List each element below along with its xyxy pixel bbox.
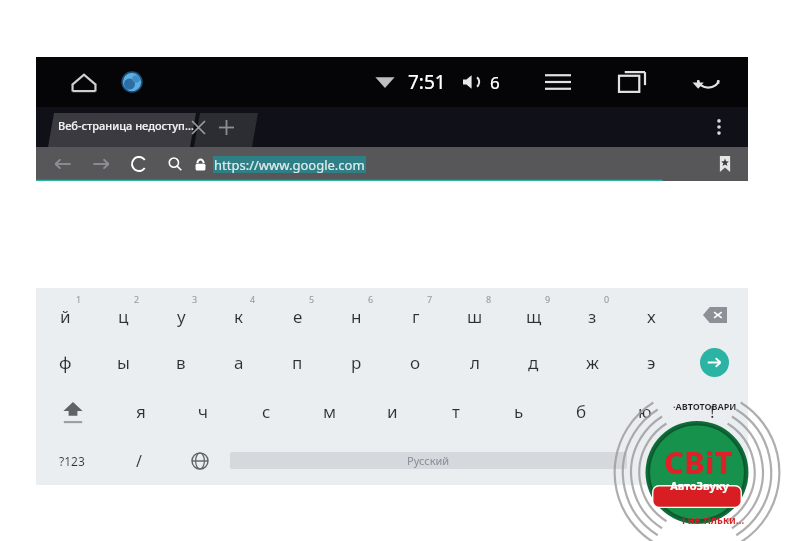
button[interactable]: Forward xyxy=(86,149,116,179)
button[interactable]: Change language xyxy=(169,436,230,485)
button[interactable]: https://www.google.com xyxy=(213,156,366,173)
button[interactable]: Browser xyxy=(112,62,152,102)
button[interactable]: б xyxy=(550,387,613,436)
button[interactable]: 5 xyxy=(268,288,327,338)
button[interactable]: ?123 xyxy=(36,436,108,485)
staticText: 2 xyxy=(134,293,140,305)
staticText: СВіТ xyxy=(664,441,733,483)
button[interactable]: 2 xyxy=(94,288,152,338)
button[interactable]: х xyxy=(622,288,681,338)
button[interactable]: / xyxy=(108,436,169,485)
button[interactable]: ь xyxy=(487,387,550,436)
staticText: у xyxy=(177,305,186,328)
button[interactable]: 8 xyxy=(445,288,504,338)
staticText: е xyxy=(293,305,303,328)
staticText: о xyxy=(410,351,421,374)
button[interactable]: д xyxy=(504,338,563,387)
staticText: д xyxy=(528,351,539,374)
staticText: Русский xyxy=(407,453,450,468)
staticText: в xyxy=(176,351,186,374)
button[interactable]: м xyxy=(298,387,361,436)
button[interactable]: Веб-страница недоступ… xyxy=(58,118,194,133)
staticText: 7:51 xyxy=(408,69,446,95)
button[interactable]: Back xyxy=(684,60,728,104)
button[interactable]: л xyxy=(445,338,504,387)
staticText: 0 xyxy=(604,293,610,305)
staticText: ь xyxy=(514,400,524,423)
staticText: ю xyxy=(638,400,652,423)
staticText: ! xyxy=(710,400,715,423)
button[interactable]: я xyxy=(109,387,172,436)
staticText: й xyxy=(60,305,71,328)
staticText: а xyxy=(234,351,244,374)
staticText: с xyxy=(262,400,271,423)
staticText: / xyxy=(136,450,142,472)
button[interactable]: т xyxy=(424,387,487,436)
button[interactable]: Go xyxy=(681,338,748,387)
button[interactable]: ю xyxy=(613,387,676,436)
button[interactable]: Русский xyxy=(230,452,627,469)
button[interactable]: Backspace xyxy=(681,288,748,338)
button[interactable]: ! xyxy=(676,387,748,436)
staticText: б xyxy=(576,400,587,423)
staticText: https://www.google.com xyxy=(214,156,365,173)
staticText: х xyxy=(647,305,656,328)
button[interactable]: Home xyxy=(64,62,104,102)
button[interactable]: п xyxy=(268,338,327,387)
staticText: 1 xyxy=(76,293,82,305)
staticText: ч xyxy=(198,400,209,423)
staticText: з xyxy=(588,305,597,328)
button[interactable]: о xyxy=(386,338,445,387)
staticText: 4 xyxy=(250,293,256,305)
button[interactable]: 1 xyxy=(36,288,94,338)
staticText: ж xyxy=(586,351,599,374)
staticText: ·АВТОТОВАРИ xyxy=(673,400,737,412)
button[interactable]: 4 xyxy=(210,288,268,338)
button[interactable]: ф xyxy=(36,338,94,387)
button[interactable]: Menu xyxy=(536,60,580,104)
button[interactable]: 9 xyxy=(504,288,563,338)
button[interactable]: Bookmark xyxy=(708,147,742,181)
button[interactable]: 0 xyxy=(563,288,622,338)
button[interactable]: Recents xyxy=(610,60,654,104)
button[interactable]: э xyxy=(622,338,681,387)
staticText: ф xyxy=(59,351,72,374)
button[interactable]: More options xyxy=(704,112,734,142)
staticText: я xyxy=(136,400,146,423)
button[interactable]: с xyxy=(235,387,298,436)
button[interactable]: ч xyxy=(172,387,235,436)
staticText: ы xyxy=(117,351,130,374)
button[interactable] xyxy=(627,436,748,485)
button[interactable]: 7 xyxy=(386,288,445,338)
button[interactable]: ж xyxy=(563,338,622,387)
staticText: і не тільки… xyxy=(682,513,745,527)
staticText: т xyxy=(452,400,460,423)
staticText: ц xyxy=(118,305,129,328)
button[interactable]: New tab xyxy=(212,113,240,141)
button[interactable]: в xyxy=(152,338,210,387)
button[interactable]: Volume xyxy=(458,68,486,96)
staticText: ш xyxy=(467,305,483,328)
staticText: 9 xyxy=(545,293,551,305)
button[interactable]: Search xyxy=(162,151,188,177)
button[interactable]: Shift xyxy=(36,387,109,436)
button[interactable]: Close tab xyxy=(184,113,212,141)
button[interactable]: Reload xyxy=(124,149,154,179)
button[interactable]: Back xyxy=(48,149,78,179)
staticText: 3 xyxy=(192,293,198,305)
button[interactable]: и xyxy=(361,387,424,436)
staticText: 8 xyxy=(486,293,492,305)
button[interactable]: 3 xyxy=(152,288,210,338)
button[interactable]: ы xyxy=(94,338,152,387)
staticText: м xyxy=(323,400,337,423)
staticText: н xyxy=(351,305,362,328)
staticText: 5 xyxy=(309,293,315,305)
staticText: щ xyxy=(526,305,542,328)
button[interactable]: Wi-Fi xyxy=(372,69,398,95)
button[interactable]: р xyxy=(327,338,386,387)
button[interactable]: а xyxy=(210,338,268,387)
staticText: к xyxy=(234,305,244,328)
staticText: г xyxy=(412,305,420,328)
staticText: э xyxy=(647,351,656,374)
button[interactable]: 6 xyxy=(327,288,386,338)
